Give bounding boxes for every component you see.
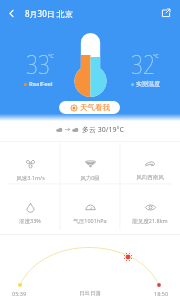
button[interactable]: 能见度21.8km [120,198,180,224]
staticText: 风力0级 [80,174,100,182]
staticText: 33 [26,47,50,81]
button[interactable]: Share [158,5,174,21]
staticText: 天气看我 [80,103,110,112]
button[interactable]: 湿度33% [0,198,60,224]
button[interactable]: 风力0级 [60,154,120,180]
staticText: 18:50 [154,290,169,297]
staticText: 日出日落 [79,290,101,297]
staticText: 能见度21.8km [132,217,168,225]
staticText: °C [48,52,54,59]
staticText: 风向西南风 [136,174,164,181]
staticText: RealFeel [29,80,53,88]
staticText: 05:39 [12,290,27,297]
staticText: 8月30日 北京 [25,8,73,19]
staticText: 多云 30/19°C [82,125,124,135]
button[interactable]: 天气看我 [59,101,120,114]
staticText: 实测温度 [136,80,160,88]
button[interactable]: Back [3,5,19,21]
staticText: 32 [131,47,155,81]
button[interactable]: 风速3.1m/s [0,154,60,180]
button[interactable]: 风向西南风 [120,154,180,180]
staticText: 气压1001hPa [73,217,107,225]
staticText: °C [153,52,159,59]
staticText: 风速3.1m/s [16,174,45,182]
staticText: 湿度33% [19,217,41,225]
button[interactable]: 气压1001hPa [60,198,120,224]
